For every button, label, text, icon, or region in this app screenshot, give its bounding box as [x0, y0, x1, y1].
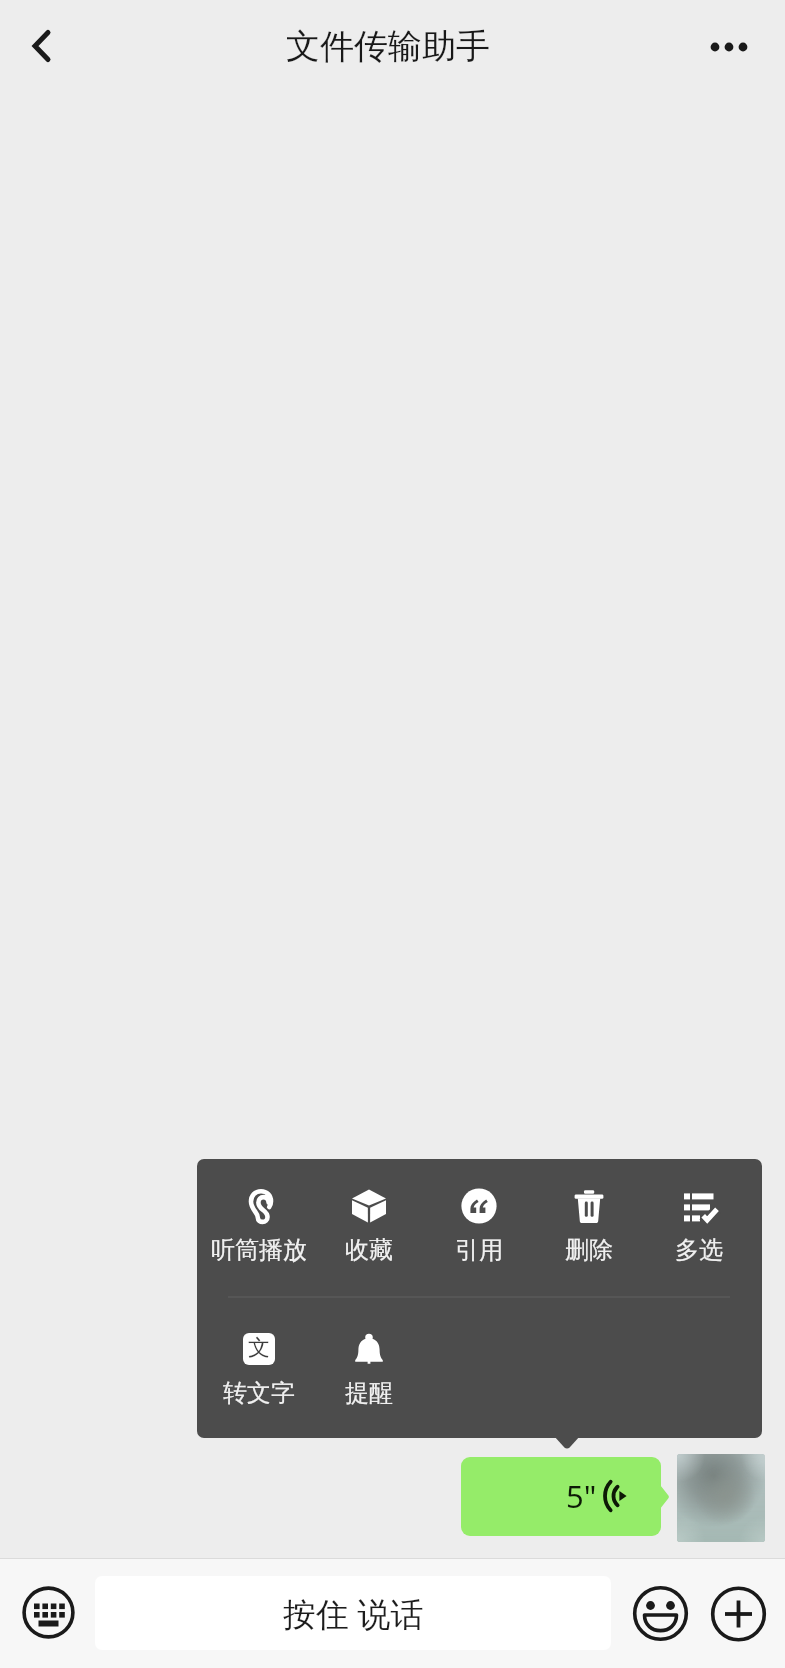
staticText: 文件传输助手 — [283, 25, 493, 68]
staticText: 文 — [248, 1334, 270, 1362]
staticText: 5" — [566, 1475, 597, 1517]
staticText: 转文字 — [223, 1378, 295, 1408]
staticText: 提醒 — [345, 1378, 393, 1408]
staticText: 删除 — [565, 1235, 613, 1265]
button[interactable]: Convert to text — [204, 1331, 314, 1408]
button[interactable]: Delete — [534, 1188, 644, 1265]
button[interactable]: Avatar — [677, 1454, 765, 1542]
button[interactable]: Remind — [314, 1331, 424, 1408]
button[interactable]: 按住 说话 — [95, 1576, 611, 1650]
staticText: 多选 — [675, 1235, 723, 1265]
button[interactable]: Voice message, 5 seconds — [461, 1457, 661, 1536]
button[interactable]: More functions — [710, 1586, 767, 1643]
button[interactable]: Quote — [424, 1188, 534, 1265]
staticText: 听筒播放 — [211, 1235, 307, 1265]
button[interactable]: More options — [703, 22, 755, 74]
staticText: 引用 — [455, 1235, 503, 1265]
button[interactable]: Favorite — [314, 1188, 424, 1265]
button[interactable]: Emoji — [632, 1585, 689, 1642]
button[interactable]: Earpiece playback — [204, 1188, 314, 1265]
staticText: 收藏 — [345, 1235, 393, 1265]
staticText: 按住 说话 — [283, 1591, 424, 1636]
button[interactable]: Keyboard — [20, 1584, 76, 1640]
button[interactable]: Back — [8, 21, 58, 71]
button[interactable]: Multi select — [644, 1188, 754, 1265]
